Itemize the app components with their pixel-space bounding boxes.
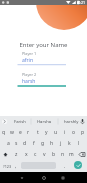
staticText: y: [45, 129, 48, 136]
button[interactable]: t: [33, 127, 42, 138]
button[interactable]: v: [40, 149, 49, 160]
staticText: Enter your Name: [0, 41, 87, 49]
button[interactable]: l: [74, 138, 83, 149]
button[interactable]: z: [11, 149, 21, 160]
staticText: 4:21: [78, 0, 86, 5]
button[interactable]: Recents: [56, 172, 70, 183]
staticText: m: [69, 151, 74, 158]
button[interactable]: d: [20, 138, 29, 149]
staticText: a: [7, 140, 10, 147]
staticText: l: [78, 140, 80, 147]
staticText: Harsha: [37, 119, 52, 125]
staticText: ?123: [3, 164, 12, 169]
button[interactable]: a: [4, 138, 12, 149]
button[interactable]: Comma: [11, 160, 21, 172]
button[interactable]: Back: [15, 172, 29, 183]
button[interactable]: f: [29, 138, 38, 149]
staticText: q: [2, 129, 6, 136]
button[interactable]: w: [8, 127, 16, 138]
button[interactable]: y: [42, 127, 51, 138]
staticText: f: [33, 140, 35, 147]
staticText: i: [64, 129, 66, 136]
staticText: p: [81, 129, 85, 136]
staticText: r: [27, 129, 30, 136]
staticText: harsh: [22, 78, 36, 85]
button[interactable]: x: [21, 149, 31, 160]
staticText: u: [54, 129, 58, 136]
staticText: o: [72, 129, 76, 136]
button[interactable]: b: [49, 149, 58, 160]
staticText: z: [15, 151, 18, 158]
button[interactable]: ?123: [1, 160, 14, 172]
button[interactable]: i: [60, 127, 69, 138]
staticText: s: [15, 140, 18, 147]
staticText: b: [52, 151, 56, 158]
button[interactable]: p: [78, 127, 87, 138]
staticText: .: [64, 163, 66, 170]
staticText: ,: [15, 163, 17, 170]
staticText: x: [25, 151, 28, 158]
staticText: Player 2: [22, 72, 37, 77]
staticText: d: [23, 140, 27, 147]
staticText: h: [50, 140, 54, 147]
staticText: Player 1: [22, 51, 37, 56]
staticText: c: [34, 151, 37, 158]
staticText: afrin: [22, 57, 33, 64]
button[interactable]: c: [31, 149, 40, 160]
button[interactable]: e: [16, 127, 24, 138]
button[interactable]: m: [67, 149, 76, 160]
button[interactable]: Shift: [0, 149, 11, 160]
button[interactable]: g: [38, 138, 47, 149]
staticText: w: [10, 129, 14, 136]
staticText: g: [41, 140, 45, 147]
button[interactable]: o: [69, 127, 78, 138]
staticText: Farish: [14, 119, 26, 125]
staticText: n: [61, 151, 65, 158]
staticText: harshly: [64, 119, 79, 125]
button[interactable]: u: [51, 127, 60, 138]
button[interactable]: h: [47, 138, 56, 149]
staticText: k: [68, 140, 71, 147]
button[interactable]: Farish: [9, 116, 31, 127]
button[interactable]: harshly: [58, 116, 85, 127]
button[interactable]: Harsha: [31, 116, 58, 127]
staticText: j: [60, 140, 62, 147]
button[interactable]: Period: [60, 160, 70, 172]
button[interactable]: s: [12, 138, 20, 149]
button[interactable]: Enter: [71, 160, 84, 172]
button[interactable]: Home: [37, 172, 51, 183]
button[interactable]: n: [58, 149, 67, 160]
button[interactable]: q: [0, 127, 8, 138]
staticText: v: [43, 151, 46, 158]
button[interactable]: r: [24, 127, 33, 138]
button[interactable]: j: [56, 138, 65, 149]
staticText: e: [19, 129, 22, 136]
button[interactable]: Backspace: [76, 149, 87, 160]
button[interactable]: k: [65, 138, 74, 149]
staticText: t: [37, 129, 39, 136]
